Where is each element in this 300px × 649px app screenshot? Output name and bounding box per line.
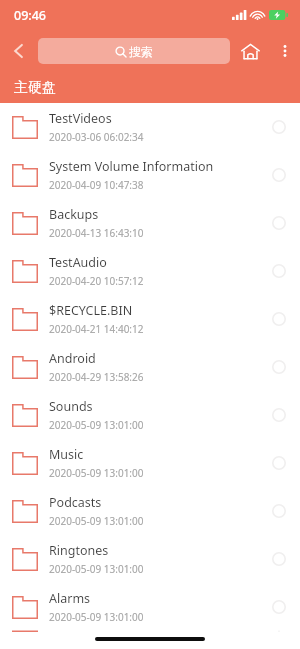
button[interactable]: Home [230,31,270,71]
button[interactable]: Android [0,343,300,391]
button[interactable]: Select Podcasts [262,494,296,528]
button[interactable]: TestVideos [0,103,300,151]
button[interactable]: Select Sounds [262,398,296,432]
button[interactable]: Select Music [262,446,296,480]
button[interactable]: Select Android [262,350,296,384]
button[interactable]: Select Backups [262,206,296,240]
staticText: 2020-05-09 13:01:00 [49,418,144,432]
staticText: 2020-05-09 13:01:00 [49,610,144,624]
button[interactable]: Select Ringtones [262,542,296,576]
staticText: Backups [49,206,99,223]
staticText: 2020-05-09 13:01:00 [49,466,144,480]
button[interactable]: More options [270,36,300,66]
staticText: 主硬盘 [14,79,56,97]
staticText: Sounds [49,398,93,415]
button[interactable]: TestAudio [0,247,300,295]
button[interactable]: Sounds [0,391,300,439]
button[interactable]: 搜索 [38,38,230,64]
button[interactable]: Notifications [0,631,300,632]
button[interactable]: Alarms [0,583,300,631]
button[interactable]: Ringtones [0,535,300,583]
staticText: Android [49,350,96,367]
staticText: Music [49,446,84,463]
button[interactable]: Select TestAudio [262,254,296,288]
button[interactable]: System Volume Information [0,151,300,199]
staticText: 2020-04-13 16:43:10 [49,226,144,240]
button[interactable]: Select $RECYCLE.BIN [262,302,296,336]
staticText: 2020-04-29 13:58:26 [49,370,144,384]
staticText: 2020-04-21 14:40:12 [49,322,144,336]
staticText: 搜索 [129,44,153,59]
staticText: 2020-05-09 13:01:00 [49,514,144,528]
staticText: Alarms [49,590,91,607]
button[interactable]: Backups [0,199,300,247]
button[interactable]: Podcasts [0,487,300,535]
button[interactable]: Select System Volume Information [262,158,296,192]
button[interactable]: $RECYCLE.BIN [0,295,300,343]
button[interactable]: Select Alarms [262,590,296,624]
staticText: TestVideos [49,110,112,127]
staticText: 2020-04-09 10:47:38 [49,178,144,192]
staticText: $RECYCLE.BIN [49,302,133,319]
button[interactable]: Back [0,32,38,70]
staticText: Ringtones [49,542,109,559]
staticText: 09:46 [14,7,47,24]
staticText: 2020-04-20 10:57:12 [49,274,144,288]
button[interactable]: Select TestVideos [262,110,296,144]
staticText: 2020-05-09 13:01:00 [49,562,144,576]
staticText: Podcasts [49,494,102,511]
staticText: System Volume Information [49,158,214,175]
staticText: TestAudio [49,254,107,271]
button[interactable]: Music [0,439,300,487]
staticText: 2020-03-06 06:02:34 [49,130,144,144]
